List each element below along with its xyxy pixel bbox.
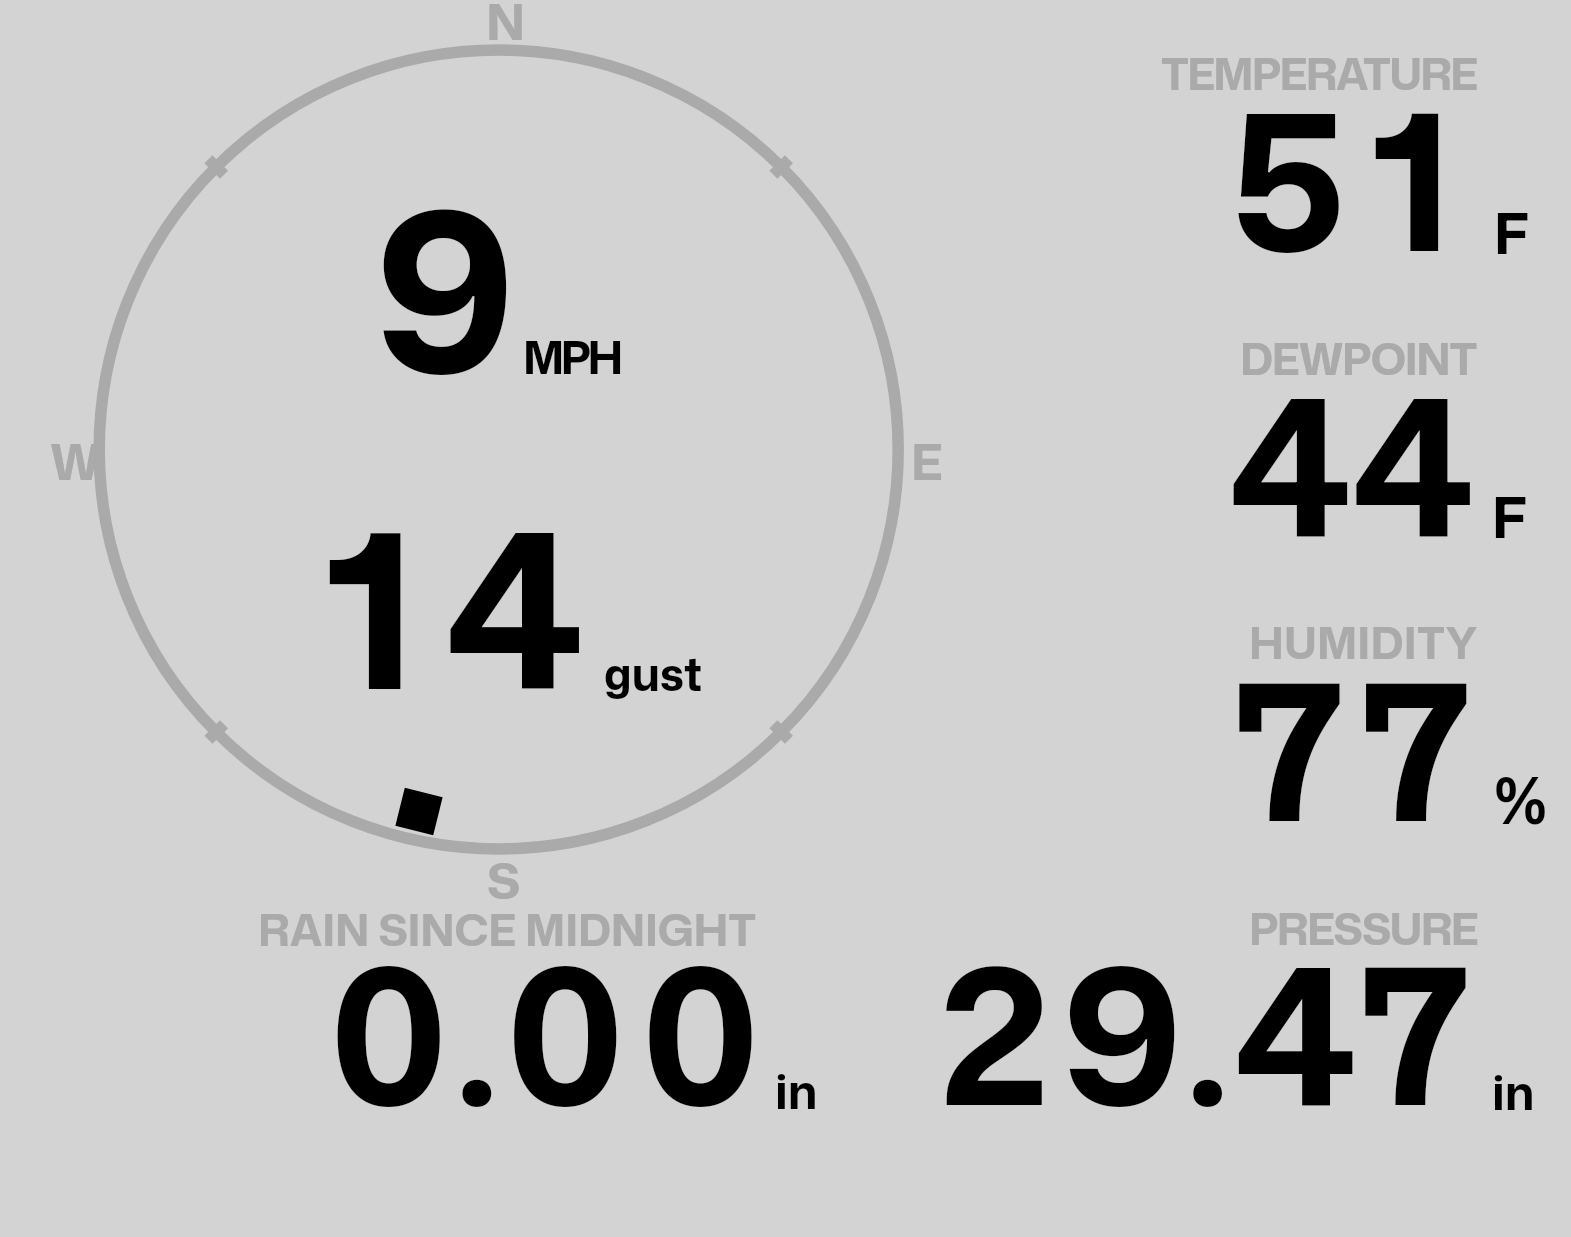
staticText: N	[486, 0, 526, 56]
staticText: HUMIDITY	[1249, 611, 1478, 673]
staticText: %	[1493, 754, 1549, 844]
staticText: TEMPERATURE	[1161, 42, 1477, 104]
staticText: gust	[604, 642, 703, 705]
staticText: 51	[1231, 44, 1480, 312]
staticText: F	[1494, 193, 1529, 272]
staticText: in	[775, 1058, 818, 1124]
staticText: in	[1492, 1059, 1535, 1125]
staticText: 77	[1233, 614, 1481, 882]
staticText: W	[50, 425, 101, 496]
staticText: 9	[375, 130, 516, 444]
staticText: E	[911, 425, 943, 496]
staticText: DEWPOINT	[1240, 327, 1476, 389]
staticText: 44	[1229, 329, 1471, 597]
staticText: F	[1492, 477, 1527, 556]
staticText: S	[487, 844, 521, 915]
staticText: 0.00	[330, 898, 773, 1166]
staticText: RAIN SINCE MIDNIGHT	[258, 898, 756, 960]
staticText: 29.47	[940, 898, 1480, 1166]
staticText: MPH	[523, 325, 620, 388]
staticText: 14	[325, 455, 614, 758]
staticText: PRESSURE	[1249, 897, 1478, 959]
